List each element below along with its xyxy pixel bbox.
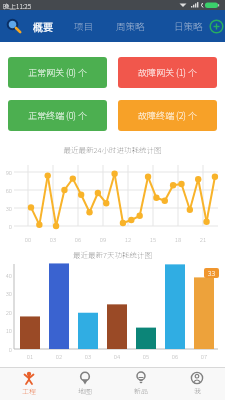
button[interactable]: 周策略 [111,10,150,42]
staticText: 21 [197,235,209,244]
staticText: 06 [72,235,84,244]
staticText: 最近最新7天功耗统计图 [0,249,225,260]
staticText: 故障终端 (2) 个 [138,109,198,122]
button[interactable]: 正常终端 (0) 个 [8,100,107,131]
staticText: 90 [0,168,12,177]
staticText: 30 [0,289,12,298]
staticText: 04 [111,352,123,361]
staticText: 18 [172,235,184,244]
staticText: 00 [22,235,34,244]
staticText: 09 [97,235,109,244]
button[interactable]: 故障终端 (2) 个 [118,100,217,131]
staticText: 10 [0,326,12,335]
button[interactable]: 故障网关 (1) 个 [118,57,217,88]
staticText: 日策略 [174,19,203,33]
staticText: 30 [0,204,12,213]
staticText: 03 [82,352,94,361]
staticText: 06 [169,352,181,361]
button[interactable]: 正常网关 (0) 个 [8,57,107,88]
staticText: 正常网关 (0) 个 [28,66,88,79]
staticText: 周策略 [116,19,145,33]
button[interactable]: 地图 [57,368,113,400]
staticText: 故障网关 (1) 个 [138,66,198,79]
staticText: 20 [0,308,12,317]
staticText: 地图 [78,386,92,396]
staticText: 12 [122,235,134,244]
staticText: 40 [0,271,12,280]
button[interactable]: 我 [169,368,225,400]
button[interactable] [208,13,225,39]
staticText: 工程 [22,386,36,396]
button[interactable]: 日策略 [169,10,208,42]
staticText: 01 [24,352,36,361]
button[interactable]: 新品 [113,368,169,400]
button[interactable]: 概要 [28,10,58,42]
staticText: 正常终端 (0) 个 [28,109,88,122]
staticText: 我 [194,386,201,396]
staticText: 0 [0,345,12,354]
staticText: 33 [204,268,219,278]
staticText: 03 [47,235,59,244]
button[interactable] [0,10,28,42]
staticText: 晚上11:25 [3,1,32,10]
staticText: 最近最新24小时进功耗统计图 [0,144,225,155]
staticText: 05 [140,352,152,361]
staticText: 项目 [74,19,94,33]
staticText: 60 [0,186,12,195]
button[interactable]: 工程 [0,368,57,400]
staticText: 新品 [134,386,148,396]
staticText: 07 [198,352,210,361]
staticText: 15 [147,235,159,244]
staticText: 0 [0,222,12,231]
staticText: 概要 [33,19,53,33]
button[interactable]: 项目 [69,10,99,42]
staticText: 02 [53,352,65,361]
